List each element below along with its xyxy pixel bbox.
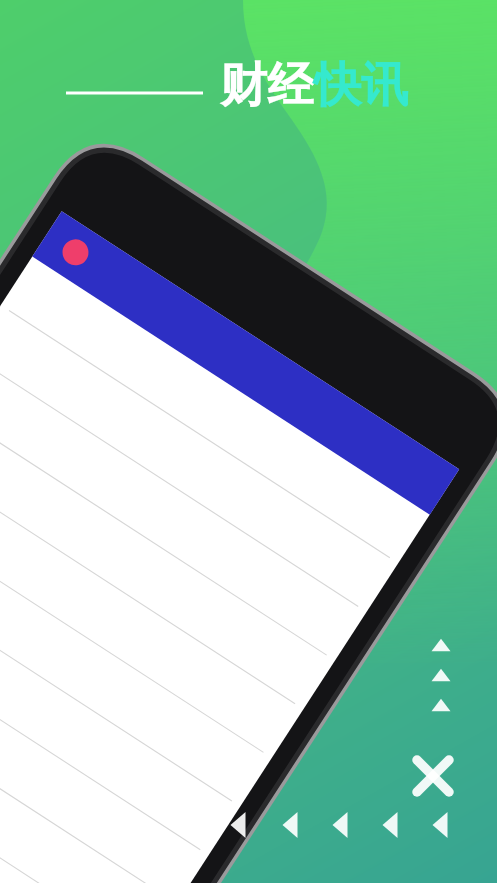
button[interactable]: Close (413, 755, 455, 797)
button[interactable]: Previous (222, 805, 484, 851)
staticText: 财经快讯 (220, 56, 408, 115)
button[interactable]: Scroll up (424, 628, 458, 716)
